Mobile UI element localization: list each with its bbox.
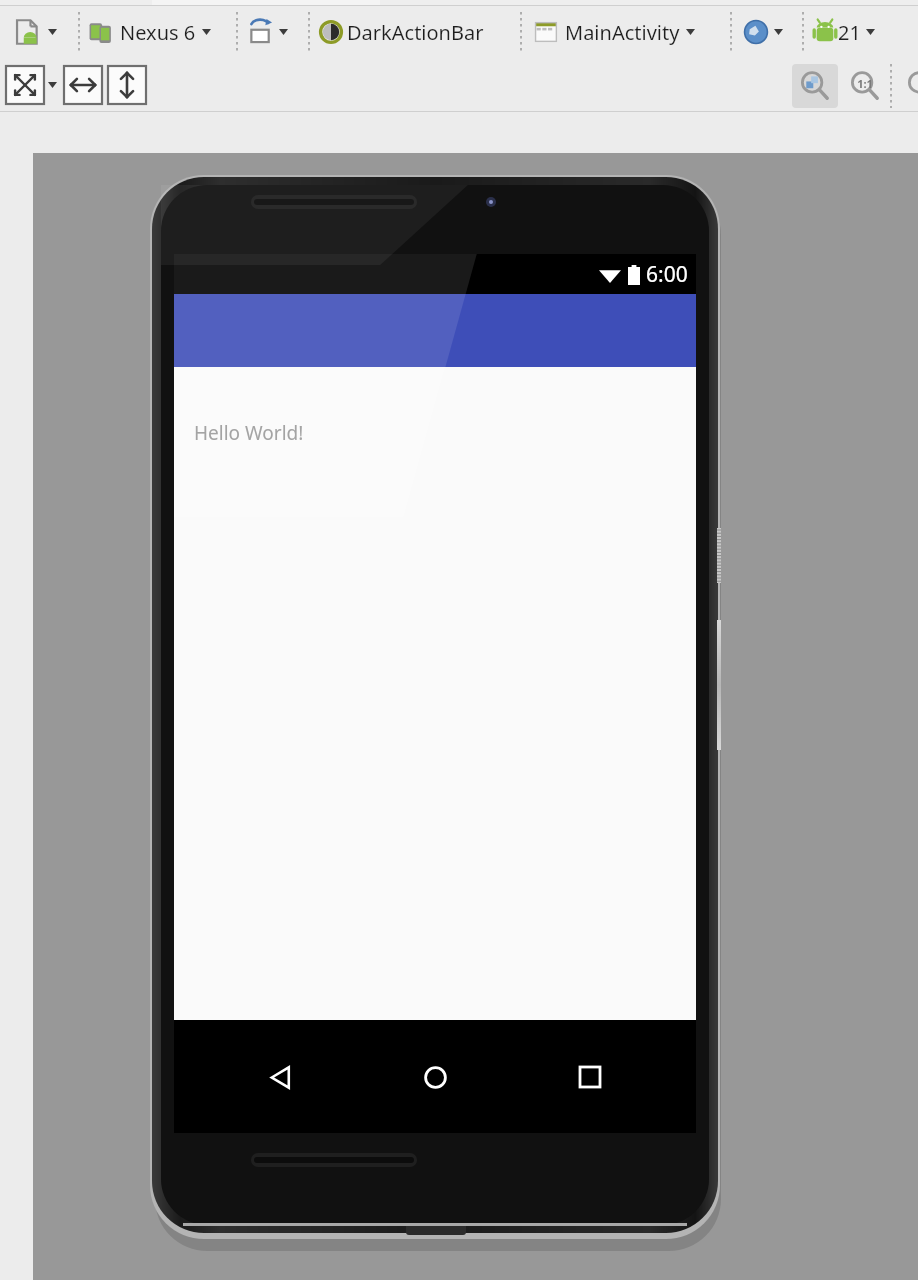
staticText: Hello World! <box>194 420 304 446</box>
button[interactable]: Home <box>407 1049 463 1105</box>
staticText: DarkActionBar <box>347 19 484 46</box>
staticText: MainActivity <box>565 19 680 46</box>
button[interactable]: Zoom 1 to 1 <box>843 64 887 108</box>
button[interactable]: MainActivity <box>534 10 695 54</box>
button[interactable]: DarkActionBar <box>318 10 484 54</box>
button[interactable]: Zoom <box>792 64 838 108</box>
button[interactable]: Locale <box>740 12 792 52</box>
staticText: 21 <box>838 19 861 46</box>
button[interactable]: Fit width <box>64 66 102 104</box>
button[interactable]: Zoom to fit <box>6 66 44 104</box>
button[interactable]: Layout file <box>8 12 68 52</box>
button[interactable]: Nexus 6 <box>88 10 211 54</box>
button[interactable]: Recents <box>562 1049 618 1105</box>
staticText: 6:00 <box>646 260 688 289</box>
button[interactable]: Zoom out <box>900 64 918 108</box>
button[interactable]: 21 <box>812 10 875 54</box>
staticText: 1:1 <box>854 76 876 91</box>
button[interactable]: Fit height <box>108 66 146 104</box>
staticText: Nexus 6 <box>120 19 196 46</box>
button[interactable]: Back <box>252 1049 308 1105</box>
button[interactable]: Orientation <box>246 12 298 52</box>
